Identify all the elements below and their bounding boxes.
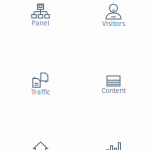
staticText: Traffic [31,87,50,96]
button[interactable]: Design [4,142,77,150]
button[interactable]: Reports [77,142,150,150]
staticText: Visitors [102,19,125,28]
staticText: Content [101,86,125,95]
button[interactable]: Traffic [4,73,77,142]
button[interactable]: Panel [4,4,77,73]
button[interactable]: Content [77,73,150,142]
staticText: Panel [31,18,49,27]
button[interactable]: Visitors [77,4,150,73]
